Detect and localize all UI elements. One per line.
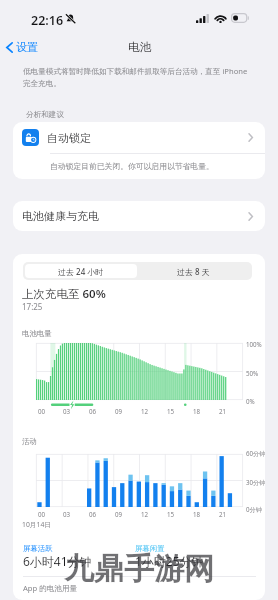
staticText: 06 bbox=[89, 407, 97, 415]
button[interactable]: 过去 8 天 bbox=[137, 264, 250, 278]
staticText: 17:25 bbox=[22, 301, 43, 312]
other: 打开 bbox=[248, 212, 253, 221]
staticText: 50% bbox=[246, 369, 259, 377]
staticText: 设置 bbox=[16, 40, 38, 54]
staticText: 低电量模式将暂时降低如下载和邮件抓取等后台活动，直至 iPhone 完全充电。 bbox=[23, 66, 255, 88]
button[interactable]: 自动锁定 bbox=[13, 122, 265, 179]
staticText: 09 bbox=[115, 510, 123, 518]
staticText: 10月14日 bbox=[22, 520, 52, 529]
staticText: 09 bbox=[115, 407, 123, 415]
staticText: 22:16 bbox=[31, 12, 64, 29]
staticText: 60分钟 bbox=[246, 449, 265, 457]
staticText: App 的电池用量 bbox=[23, 583, 78, 593]
staticText: 0% bbox=[246, 397, 255, 405]
staticText: 上次充电至 60% bbox=[22, 286, 106, 302]
staticText: 21 bbox=[219, 407, 227, 415]
staticText: 18 bbox=[193, 407, 201, 415]
staticText: 100% bbox=[246, 340, 262, 348]
staticText: 18 bbox=[193, 510, 201, 518]
button[interactable]: 过去 24 小时 bbox=[25, 264, 137, 278]
staticText: 21 bbox=[219, 510, 227, 518]
staticText: 过去 8 天 bbox=[177, 266, 210, 277]
staticText: 6小时41分钟 bbox=[23, 553, 92, 569]
staticText: 00 bbox=[38, 407, 46, 415]
staticText: 1小时25分钟 bbox=[135, 553, 204, 569]
staticText: 活动 bbox=[22, 437, 37, 446]
staticText: 00 bbox=[38, 510, 46, 518]
staticText: 自动锁定 bbox=[47, 131, 91, 145]
staticText: 03 bbox=[63, 407, 71, 415]
staticText: 12 bbox=[141, 407, 149, 415]
staticText: 屏幕活跃 bbox=[23, 544, 53, 553]
staticText: 电池 bbox=[128, 40, 151, 54]
staticText: 15 bbox=[167, 510, 175, 518]
staticText: 06 bbox=[89, 510, 97, 518]
staticText: 电池健康与充电 bbox=[22, 209, 99, 223]
staticText: 0分钟 bbox=[246, 505, 262, 513]
staticText: 九鼎手游网 bbox=[64, 550, 214, 588]
button[interactable]: 电池健康与充电 bbox=[13, 201, 265, 231]
staticText: 15 bbox=[167, 407, 175, 415]
staticText: 自动锁定目前已关闭。你可以启用以节省电量。 bbox=[50, 161, 214, 171]
staticText: 屏幕闲置 bbox=[135, 544, 165, 553]
staticText: 30分钟 bbox=[246, 478, 265, 486]
other: 打开 bbox=[248, 133, 253, 142]
staticText: 12 bbox=[141, 510, 149, 518]
staticText: 过去 24 小时 bbox=[58, 266, 104, 277]
staticText: 电池电量 bbox=[22, 329, 52, 338]
button[interactable]: 设置 bbox=[0, 37, 44, 57]
staticText: 分析和建议 bbox=[26, 110, 64, 120]
staticText: 03 bbox=[63, 510, 71, 518]
